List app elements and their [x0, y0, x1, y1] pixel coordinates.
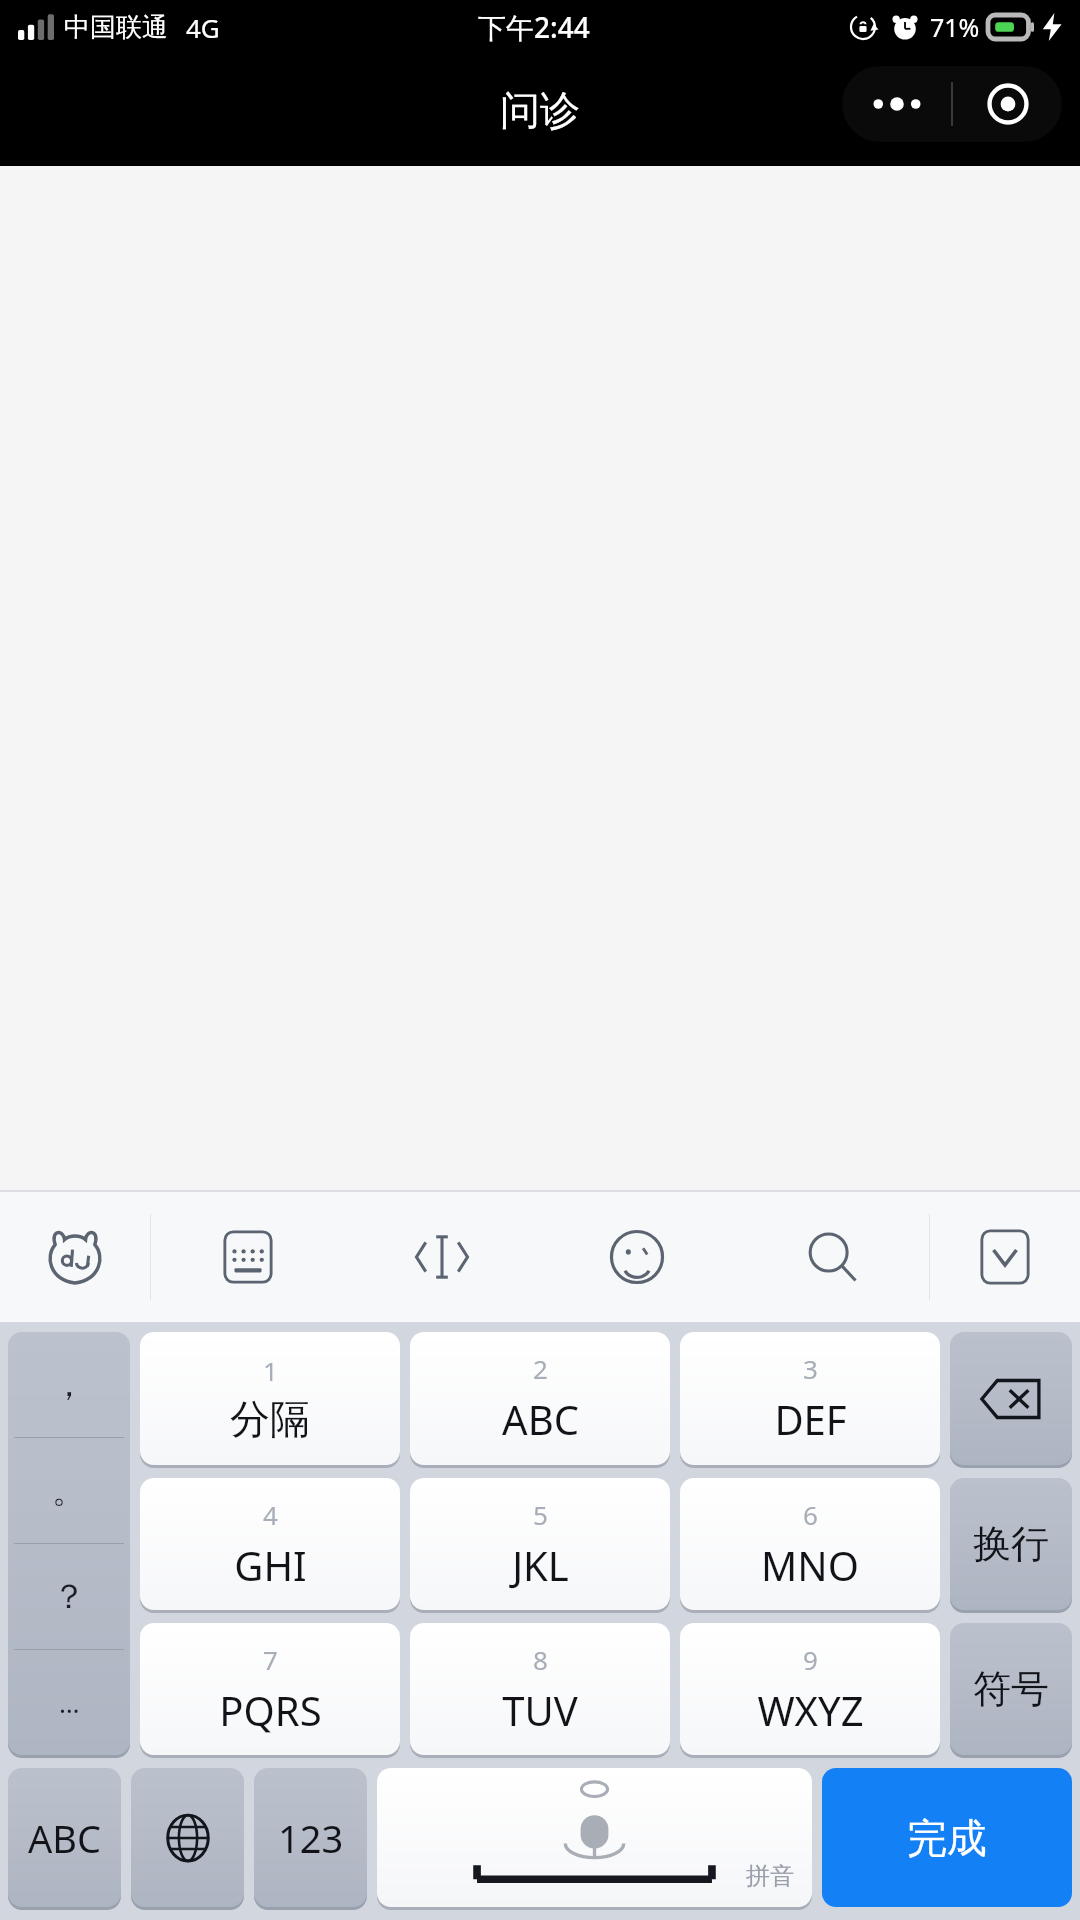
staticText: DEF: [774, 1392, 847, 1446]
button[interactable]: Text cursor: [345, 1192, 539, 1322]
staticText: 中国联通: [64, 11, 168, 44]
button[interactable]: 5: [410, 1478, 670, 1610]
button[interactable]: Space, voice input: [377, 1768, 812, 1907]
staticText: 换行: [973, 1520, 1049, 1568]
staticText: JKL: [512, 1538, 569, 1592]
staticText: 5: [533, 1497, 548, 1532]
button[interactable]: 9: [680, 1623, 940, 1755]
staticText: 3: [803, 1351, 818, 1386]
button[interactable]: 4: [140, 1478, 400, 1610]
staticText: 4G: [186, 10, 220, 45]
button[interactable]: Baidu input: [0, 1192, 150, 1322]
button[interactable]: Switch language: [131, 1768, 244, 1907]
staticText: 问诊: [500, 85, 580, 135]
button[interactable]: Close mini program: [953, 66, 1062, 142]
staticText: 123: [278, 1812, 344, 1864]
staticText: WXYZ: [757, 1683, 864, 1737]
staticText: ，: [52, 1363, 86, 1406]
button[interactable]: 。: [8, 1438, 130, 1543]
button[interactable]: 3: [680, 1332, 940, 1465]
button[interactable]: 完成: [822, 1768, 1072, 1907]
staticText: 1: [263, 1353, 278, 1388]
button[interactable]: 6: [680, 1478, 940, 1610]
staticText: ？: [52, 1575, 86, 1618]
staticText: 4: [263, 1497, 278, 1532]
button[interactable]: 123: [254, 1768, 367, 1907]
staticText: 。: [52, 1469, 86, 1512]
button[interactable]: Backspace: [950, 1332, 1072, 1465]
staticText: ABC: [28, 1812, 101, 1864]
button[interactable]: ABC: [8, 1768, 121, 1907]
button[interactable]: Keyboard layout: [151, 1192, 345, 1322]
button[interactable]: Emoji: [539, 1192, 734, 1322]
staticText: 8: [533, 1642, 548, 1677]
button[interactable]: 符号: [950, 1623, 1072, 1755]
staticText: ABC: [502, 1392, 579, 1446]
staticText: 9: [803, 1642, 818, 1677]
staticText: GHI: [234, 1538, 307, 1592]
staticText: 完成: [907, 1813, 987, 1863]
button[interactable]: ？: [8, 1544, 130, 1649]
button[interactable]: 7: [140, 1623, 400, 1755]
staticText: PQRS: [219, 1683, 322, 1737]
staticText: 下午2:44: [478, 8, 590, 46]
staticText: 71%: [930, 10, 980, 44]
button[interactable]: 2: [410, 1332, 670, 1465]
button[interactable]: 换行: [950, 1478, 1072, 1610]
staticText: 7: [263, 1642, 278, 1677]
button[interactable]: Hide keyboard: [930, 1192, 1080, 1322]
button[interactable]: More: [842, 66, 951, 142]
staticText: 拼音: [746, 1861, 794, 1891]
staticText: …: [59, 1685, 80, 1720]
staticText: MNO: [761, 1538, 859, 1592]
staticText: TUV: [502, 1683, 578, 1737]
button[interactable]: Search: [734, 1192, 929, 1322]
button[interactable]: …: [8, 1650, 130, 1755]
staticText: 2: [533, 1351, 548, 1386]
staticText: 6: [803, 1497, 818, 1532]
staticText: 分隔: [230, 1394, 310, 1444]
button[interactable]: 8: [410, 1623, 670, 1755]
button[interactable]: 1: [140, 1332, 400, 1465]
staticText: 符号: [973, 1665, 1049, 1713]
button[interactable]: ，: [8, 1332, 130, 1437]
